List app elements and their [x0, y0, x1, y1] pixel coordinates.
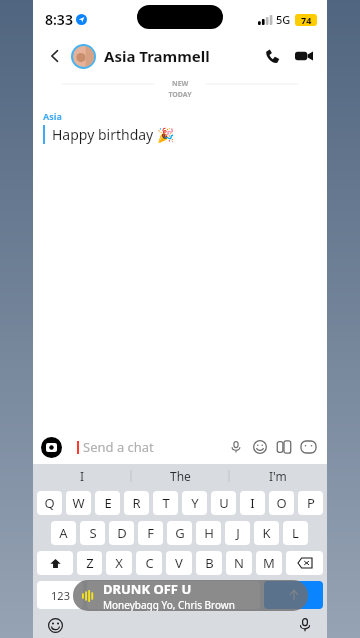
button[interactable]: Video call [291, 43, 317, 69]
staticText: DRUNK OFF U [103, 580, 192, 598]
button[interactable]: The [131, 464, 229, 488]
staticText: O [276, 494, 287, 512]
button[interactable]: I [240, 491, 265, 515]
button[interactable]: Back [43, 44, 67, 68]
button[interactable]: W [66, 491, 91, 515]
button[interactable]: S [80, 521, 105, 545]
button[interactable]: T [153, 491, 178, 515]
button[interactable]: F [138, 521, 163, 545]
staticText: 123 [51, 588, 70, 603]
staticText: G [175, 524, 185, 542]
button[interactable]: K [254, 521, 279, 545]
staticText: V [175, 554, 183, 572]
staticText: P [307, 494, 315, 512]
button[interactable]: N [226, 551, 252, 575]
staticText: L [292, 524, 299, 542]
staticText: C [145, 554, 154, 572]
button[interactable]: Games [297, 436, 319, 458]
staticText: M [263, 554, 275, 572]
button[interactable]: Y [182, 491, 207, 515]
button[interactable]: D [109, 521, 134, 545]
button[interactable]: Backspace [286, 551, 323, 575]
staticText: Y [191, 494, 199, 512]
button[interactable]: C [136, 551, 162, 575]
staticText: A [59, 524, 68, 542]
button[interactable]: Stickers [249, 436, 271, 458]
button[interactable]: Space [87, 581, 260, 609]
staticText: 8:33 [45, 10, 73, 29]
button[interactable]: L [283, 521, 308, 545]
button[interactable]: J [225, 521, 250, 545]
staticText: S [89, 524, 97, 542]
staticText: Asia Trammell [104, 46, 259, 66]
staticText: 74 [301, 14, 312, 26]
button[interactable]: Send [264, 581, 323, 609]
staticText: The [170, 468, 191, 484]
staticText: E [104, 494, 112, 512]
button[interactable]: Bitmoji [273, 436, 295, 458]
button[interactable]: Profile [71, 44, 96, 69]
button[interactable]: E [95, 491, 120, 515]
button[interactable]: Q [37, 491, 62, 515]
staticText: Q [44, 494, 55, 512]
button[interactable]: P [298, 491, 323, 515]
button[interactable]: I'm [229, 464, 327, 488]
staticText: K [262, 524, 271, 542]
button[interactable]: 123 [37, 581, 83, 609]
staticText: N [234, 554, 244, 572]
button[interactable]: V [166, 551, 192, 575]
button[interactable]: Shift [37, 551, 73, 575]
staticText: R [132, 494, 141, 512]
staticText: F [147, 524, 154, 542]
staticText: D [117, 524, 127, 542]
staticText: B [205, 554, 214, 572]
staticText: H [204, 524, 214, 542]
staticText: Asia [43, 110, 62, 122]
staticText: I [80, 468, 85, 484]
button[interactable]: Z [77, 551, 102, 575]
staticText: X [115, 554, 123, 572]
button[interactable]: I [33, 464, 131, 488]
staticText: T [162, 494, 170, 512]
button[interactable]: O [269, 491, 294, 515]
staticText: Send a chat [83, 438, 154, 456]
button[interactable]: A [51, 521, 76, 545]
staticText: 5G [276, 12, 291, 27]
button[interactable]: M [256, 551, 282, 575]
staticText: U [219, 494, 229, 512]
button[interactable]: G [167, 521, 192, 545]
button[interactable]: Voice note [225, 436, 247, 458]
staticText: Z [86, 554, 94, 572]
button[interactable]: Dictation [295, 615, 315, 635]
staticText: I [250, 494, 255, 512]
button[interactable]: Call [259, 43, 285, 69]
button[interactable]: X [106, 551, 132, 575]
button[interactable]: H [196, 521, 221, 545]
staticText: NEW [172, 79, 189, 89]
button[interactable]: Emoji [45, 615, 65, 635]
staticText: W [72, 494, 85, 512]
button[interactable]: B [196, 551, 222, 575]
button[interactable]: U [211, 491, 236, 515]
staticText: I'm [269, 468, 287, 484]
staticText: Happy birthday 🎉 [52, 125, 175, 144]
staticText: TODAY [33, 90, 327, 100]
button[interactable]: R [124, 491, 149, 515]
staticText: Moneybagg Yo, Chris Brown [103, 598, 235, 611]
button[interactable]: Send a chat [69, 435, 225, 459]
button[interactable]: DRUNK OFF U [73, 580, 308, 611]
staticText: J [236, 524, 240, 542]
button[interactable]: Camera [41, 437, 62, 458]
